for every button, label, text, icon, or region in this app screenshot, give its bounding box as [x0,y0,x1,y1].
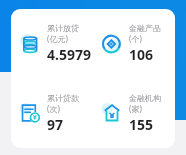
staticText: 累计放贷 [47,23,79,33]
staticText: 累计贷款 [47,93,79,103]
staticText: (次) [47,103,60,114]
staticText: 金融产品 [129,23,161,33]
other: 金融机构 [101,102,123,124]
button[interactable]: 金融产品 [93,9,175,78]
other: 累计放贷 [19,33,41,55]
staticText: 97 [47,115,64,134]
button[interactable]: 累计贷款 [11,78,93,148]
staticText: (家) [129,103,142,114]
staticText: 155 [129,115,154,134]
staticText: 106 [129,45,154,64]
other: 金融产品 [101,33,123,55]
staticText: 金融机构 [129,93,161,103]
button[interactable]: 金融机构 [93,78,175,148]
staticText: 4.5979 [47,45,91,64]
other: 累计贷款 [19,102,41,124]
staticText: (亿元) [47,33,68,44]
staticText: (个) [129,33,142,44]
button[interactable]: 累计放贷 [11,9,93,78]
